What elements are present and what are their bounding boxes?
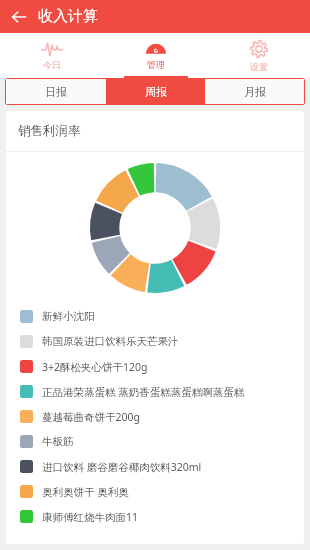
button[interactable]: 日报 (6, 79, 106, 104)
button[interactable]: 管理 (104, 33, 207, 78)
staticText: 进口饮料 磨谷磨谷椰肉饮料320ml (42, 460, 202, 474)
button[interactable]: 韩国原装进口饮料乐天芒果汁 (20, 329, 296, 354)
staticText: 牛板筋 (42, 435, 74, 448)
button[interactable]: 蔓越莓曲奇饼干200g (20, 404, 296, 429)
button[interactable]: 新鲜小沈阳 (20, 304, 296, 329)
button[interactable]: 周报 (106, 79, 205, 104)
staticText: 日报 (45, 85, 67, 99)
staticText: 管理 (147, 59, 165, 70)
button[interactable]: 牛板筋 (20, 429, 296, 454)
staticText: 月报 (244, 85, 266, 99)
staticText: 收入计算 (38, 7, 98, 26)
button[interactable]: 正品港荣蒸蛋糕 蒸奶香蛋糕蒸蛋糕啊蒸蛋糕 (20, 379, 296, 404)
staticText: 新鲜小沈阳 (42, 310, 95, 323)
button[interactable]: 进口饮料 磨谷磨谷椰肉饮料320ml (20, 454, 296, 479)
staticText: 设置 (250, 61, 268, 72)
button[interactable]: 奥利奥饼干 奥利奥 (20, 479, 296, 504)
staticText: 周报 (145, 85, 167, 99)
staticText: 康师傅红烧牛肉面11 (42, 510, 139, 524)
button[interactable]: 康师傅红烧牛肉面11 (20, 504, 296, 529)
staticText: 韩国原装进口饮料乐天芒果汁 (42, 335, 179, 348)
staticText: 今日 (43, 59, 61, 70)
staticText: 奥利奥饼干 奥利奥 (42, 485, 129, 499)
staticText: 3+2酥松夹心饼干120g (42, 360, 148, 374)
button[interactable]: Back (4, 2, 34, 32)
button[interactable]: 今日 (0, 33, 104, 78)
staticText: 销售利润率 (18, 123, 81, 139)
button[interactable]: 设置 (207, 33, 310, 78)
button[interactable]: 月报 (205, 79, 304, 104)
staticText: 蔓越莓曲奇饼干200g (42, 410, 140, 424)
staticText: 正品港荣蒸蛋糕 蒸奶香蛋糕蒸蛋糕啊蒸蛋糕 (42, 385, 245, 399)
button[interactable]: 3+2酥松夹心饼干120g (20, 354, 296, 379)
